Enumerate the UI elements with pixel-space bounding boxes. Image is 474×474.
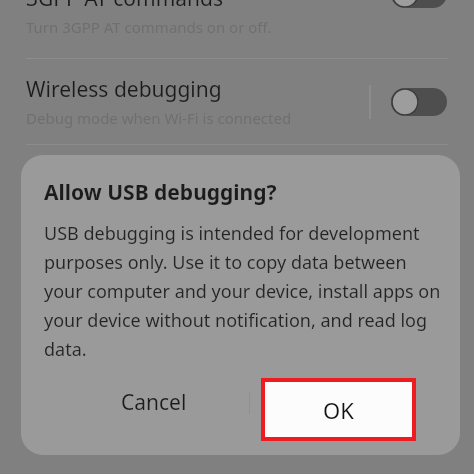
staticText: Wireless debugging xyxy=(26,75,222,104)
button[interactable]: Toggle switch, off xyxy=(391,0,447,8)
button[interactable]: 3GPP AT commands xyxy=(0,0,474,53)
button[interactable]: Cancel xyxy=(121,388,187,417)
staticText: Debug mode when Wi-Fi is connected xyxy=(26,108,292,128)
button[interactable]: Toggle switch, off xyxy=(391,88,447,116)
button[interactable]: Wireless debugging xyxy=(0,75,474,128)
staticText: Turn 3GPP AT commands on or off. xyxy=(26,17,272,37)
staticText: Cancel xyxy=(121,388,187,417)
staticText: USB debugging is intended for developmen… xyxy=(44,221,442,361)
button[interactable]: OK xyxy=(265,382,412,437)
staticText: Allow USB debugging? xyxy=(44,178,277,207)
staticText: OK xyxy=(323,395,354,425)
staticText: 3GPP AT commands xyxy=(26,0,224,13)
